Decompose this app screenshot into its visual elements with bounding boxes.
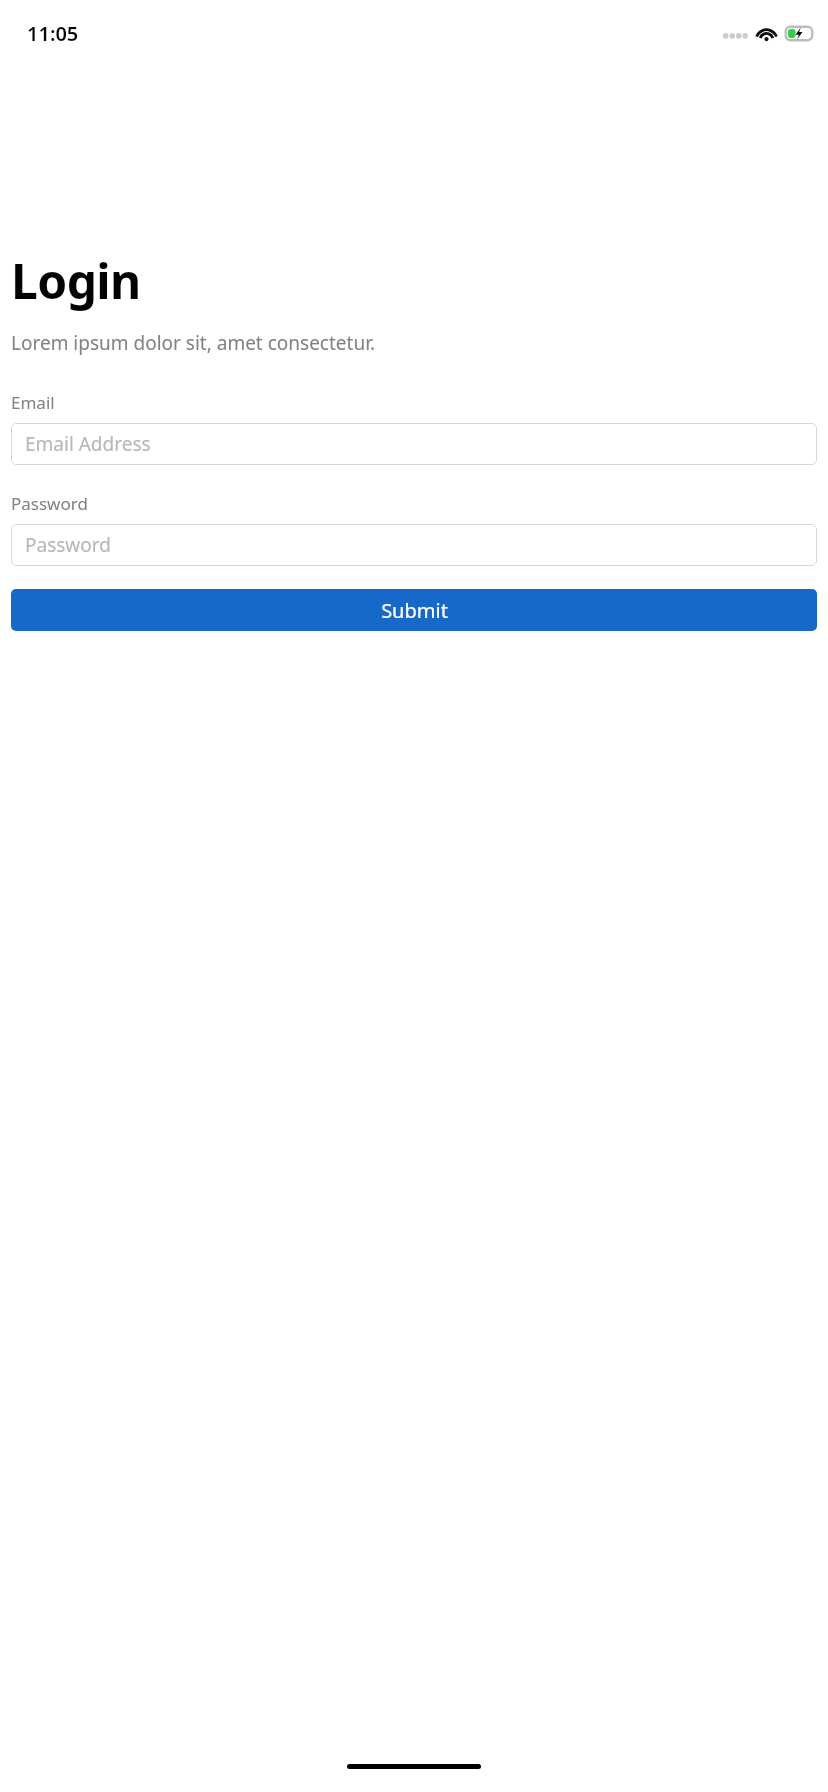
staticText: Submit <box>381 597 448 624</box>
staticText: 11:05 <box>27 20 79 47</box>
button[interactable]: Email Address <box>11 423 817 465</box>
button[interactable]: Password <box>11 524 817 566</box>
staticText: Login <box>11 248 141 313</box>
staticText: Password <box>11 492 88 515</box>
staticText: Lorem ipsum dolor sit, amet consectetur. <box>11 330 376 356</box>
staticText: Email <box>11 391 55 414</box>
staticText: Email Address <box>25 431 151 457</box>
staticText: Password <box>25 532 111 558</box>
button[interactable]: Submit <box>11 589 817 631</box>
